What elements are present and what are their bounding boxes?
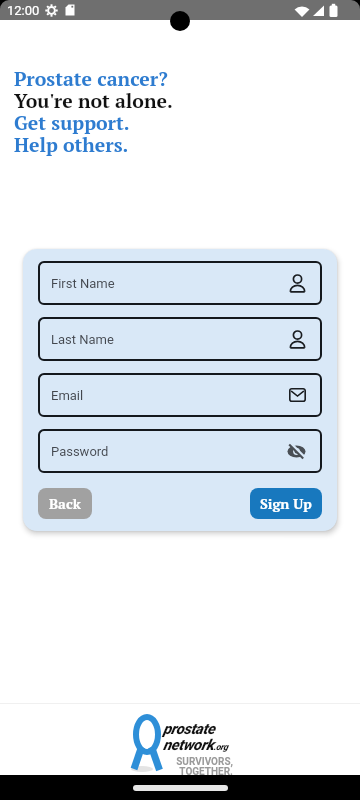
button[interactable]: Back xyxy=(38,488,92,519)
staticText: Email xyxy=(51,388,84,403)
button[interactable]: First Name xyxy=(38,261,322,305)
button[interactable]: Email xyxy=(38,373,322,417)
staticText: First Name xyxy=(51,276,115,291)
staticText: SURVIVORS, TOGETHER. xyxy=(163,756,233,777)
staticText: Sign Up xyxy=(260,494,312,513)
staticText: prostate network.org xyxy=(163,720,228,754)
staticText: 12:00 xyxy=(7,3,40,18)
staticText: Password xyxy=(51,444,109,459)
button[interactable]: Last Name xyxy=(38,317,322,361)
staticText: Prostate cancer? You're not alone. Get s… xyxy=(14,66,173,158)
staticText: Last Name xyxy=(51,332,114,347)
button[interactable]: Sign Up xyxy=(250,488,322,519)
staticText: Back xyxy=(49,494,81,513)
button[interactable]: Password xyxy=(38,429,322,473)
